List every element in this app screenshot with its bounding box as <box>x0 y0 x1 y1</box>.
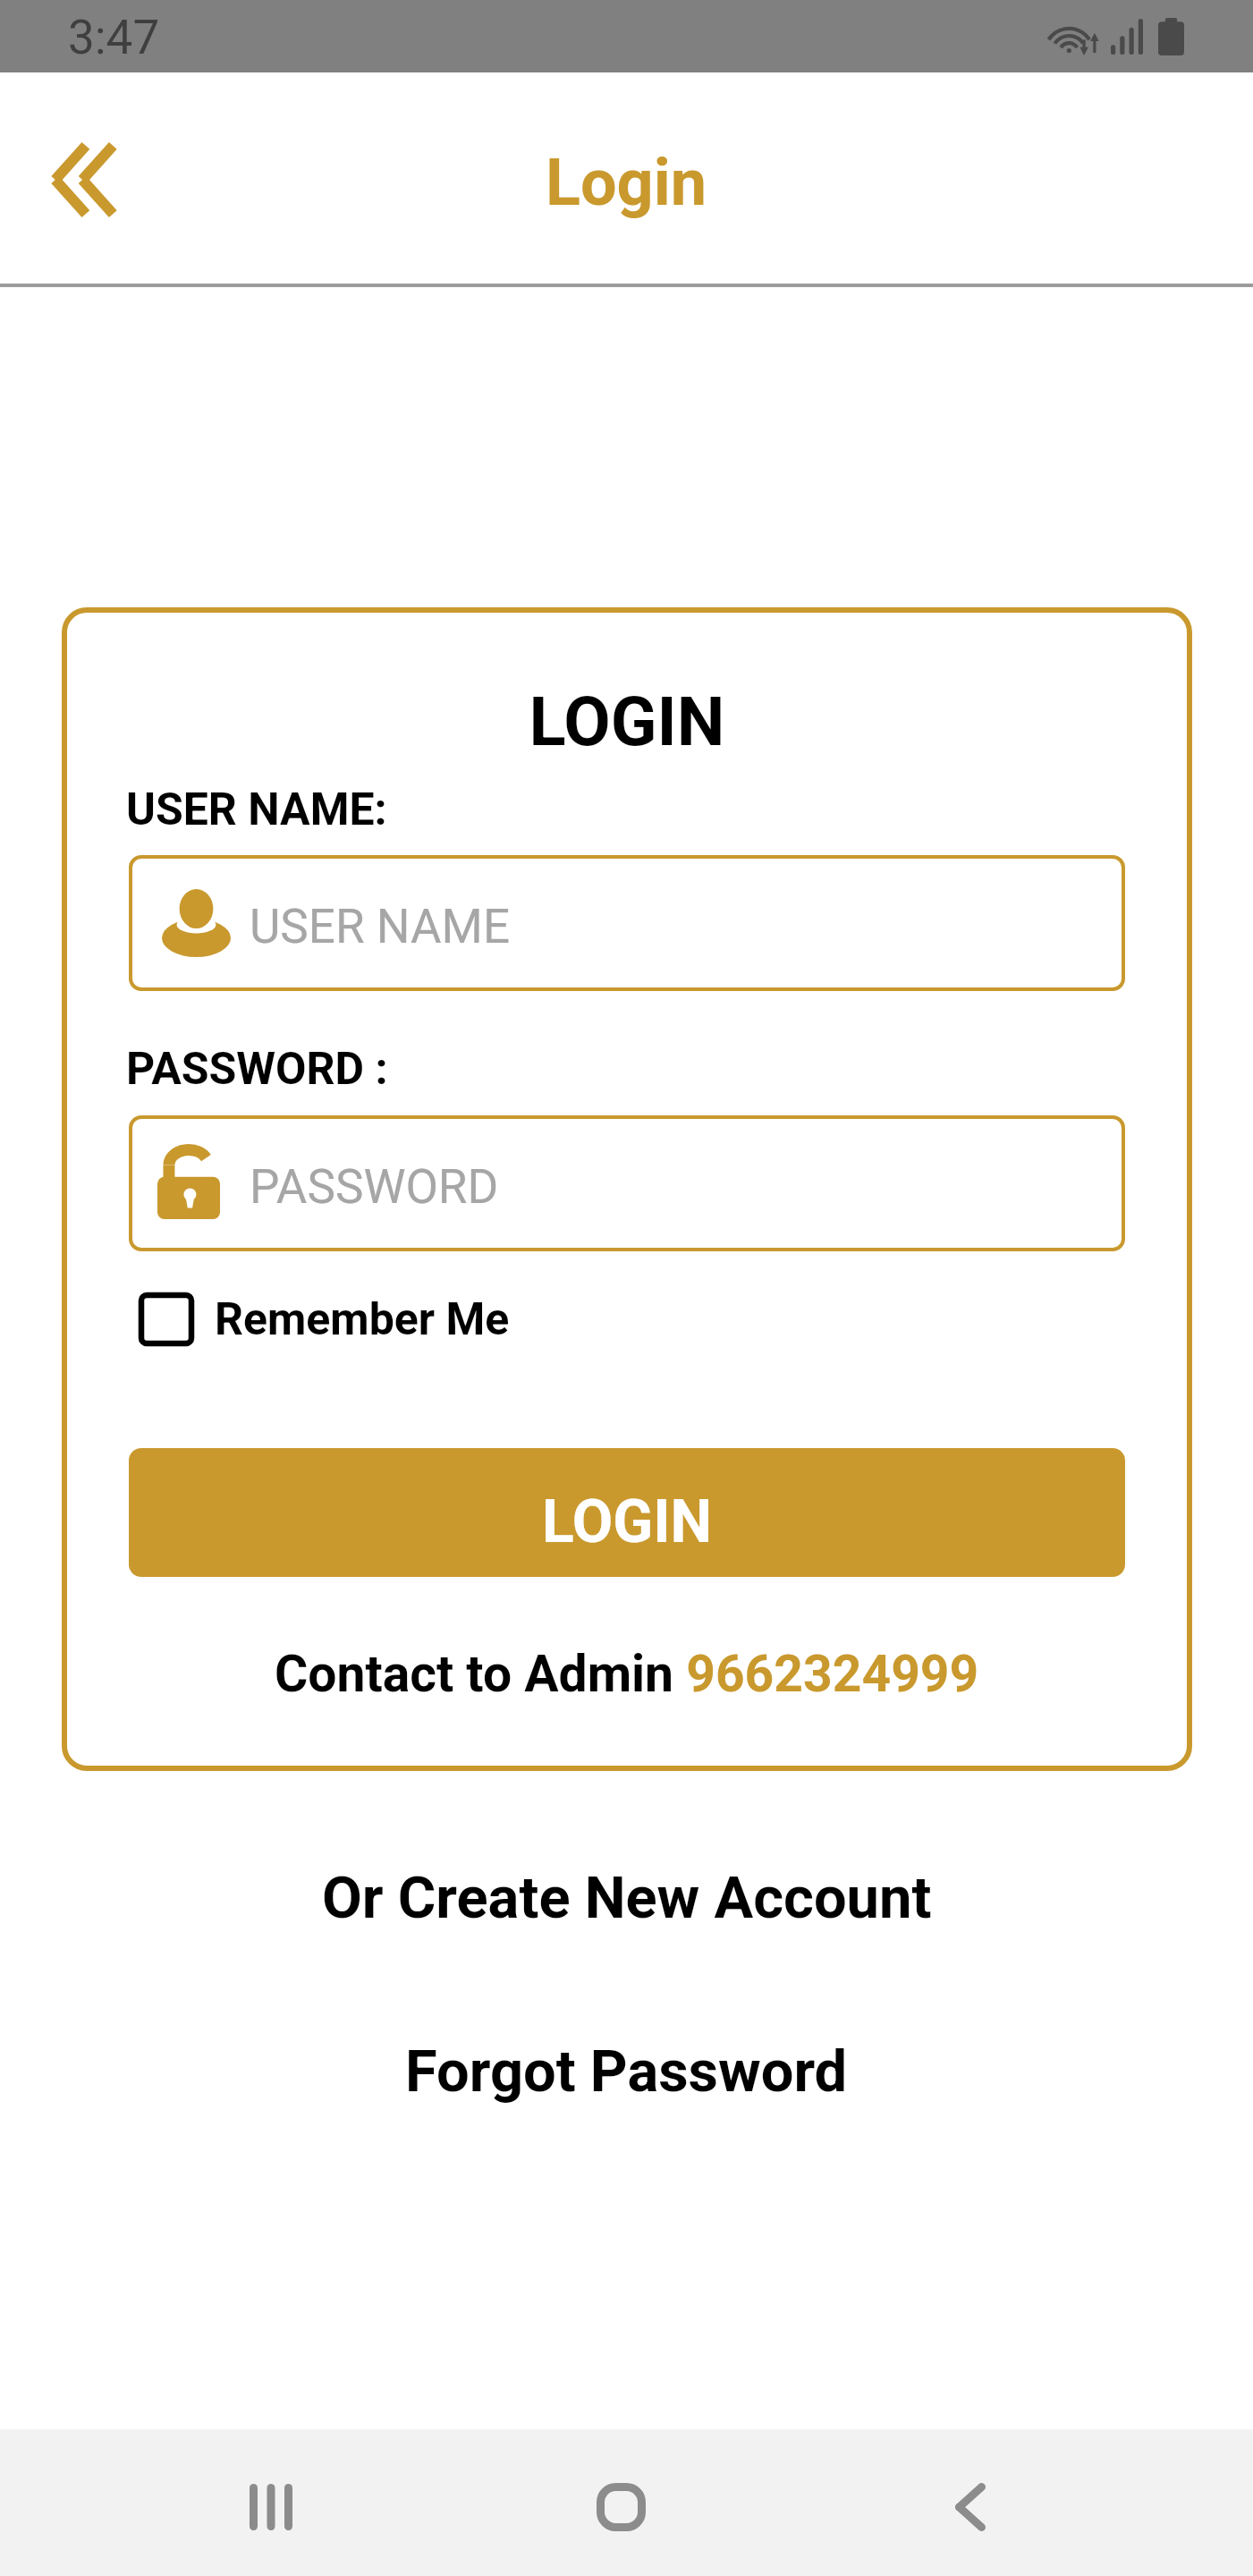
button[interactable]: Back <box>24 113 144 247</box>
staticText: PASSWORD : <box>126 1043 388 1096</box>
button[interactable]: Remember Me <box>139 1286 510 1352</box>
button[interactable]: LOGIN <box>129 1448 1125 1577</box>
staticText: LOGIN <box>542 1487 712 1556</box>
button[interactable]: Recent apps <box>182 2434 360 2576</box>
staticText: LOGIN <box>62 682 1192 761</box>
button[interactable]: USER NAME <box>129 855 1125 991</box>
staticText: Login <box>546 145 707 220</box>
button[interactable]: PASSWORD <box>129 1115 1125 1251</box>
staticText: 3:47 <box>68 10 160 65</box>
staticText: USER NAME <box>250 899 511 954</box>
staticText: Forgot Password <box>405 2038 848 2106</box>
staticText: USER NAME: <box>126 784 387 836</box>
staticText: Or Create New Account <box>322 1864 932 1932</box>
staticText: Contact to Admin 9662324999 <box>275 1644 979 1704</box>
button[interactable]: Back <box>881 2434 1060 2576</box>
button[interactable]: Contact to Admin 9662324999 <box>62 1644 1192 1716</box>
button[interactable]: Forgot Password <box>0 2014 1253 2129</box>
button[interactable]: Or Create New Account <box>0 1841 1253 1955</box>
staticText: PASSWORD <box>250 1159 499 1215</box>
button[interactable]: Home <box>531 2434 710 2576</box>
staticText: Remember Me <box>215 1293 510 1346</box>
